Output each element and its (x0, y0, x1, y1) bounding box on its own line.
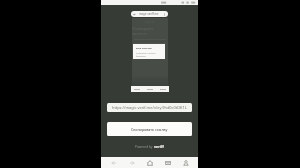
staticText: Откройте ссылку в браузере (136, 52, 163, 58)
button[interactable]: Back (131, 11, 168, 17)
staticText: https://magic.verif.me/v/ey.9hd0c0tOK1L (112, 105, 187, 110)
button[interactable]: Back (108, 157, 119, 168)
staticText: veriff (154, 144, 164, 149)
staticText: Powered by (135, 145, 153, 149)
button[interactable]: https://magic.verif.me/v/ey.9hd0c0tOK1L (107, 103, 192, 112)
button[interactable]: Tabs (162, 157, 173, 168)
staticText: Скопировать ссылку (131, 127, 168, 132)
button[interactable]: Forward (126, 157, 137, 168)
staticText: magic.veriff.me (139, 12, 159, 16)
staticText: Подтвердите личность (132, 26, 168, 36)
staticText: Ваш браузер (136, 46, 152, 49)
button[interactable]: Home (144, 157, 155, 168)
other: Menu (163, 13, 166, 16)
button[interactable]: Скопировать ссылку (107, 122, 192, 136)
button[interactable]: Profile (180, 157, 191, 168)
other: Back (133, 13, 136, 16)
